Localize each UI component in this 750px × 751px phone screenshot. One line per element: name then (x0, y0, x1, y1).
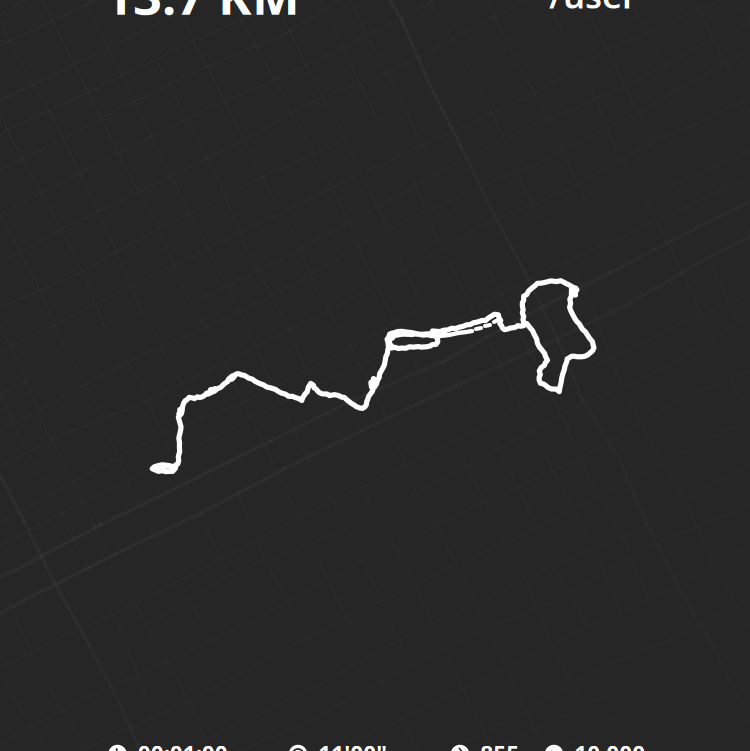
staticText: 855 (480, 739, 519, 751)
staticText: 10,000 (574, 739, 645, 751)
staticText: /user (549, 0, 637, 18)
staticText: 11'00" (318, 739, 387, 751)
staticText: 13.7 KM (104, 0, 300, 29)
staticText: 00:01:00 (138, 739, 228, 751)
